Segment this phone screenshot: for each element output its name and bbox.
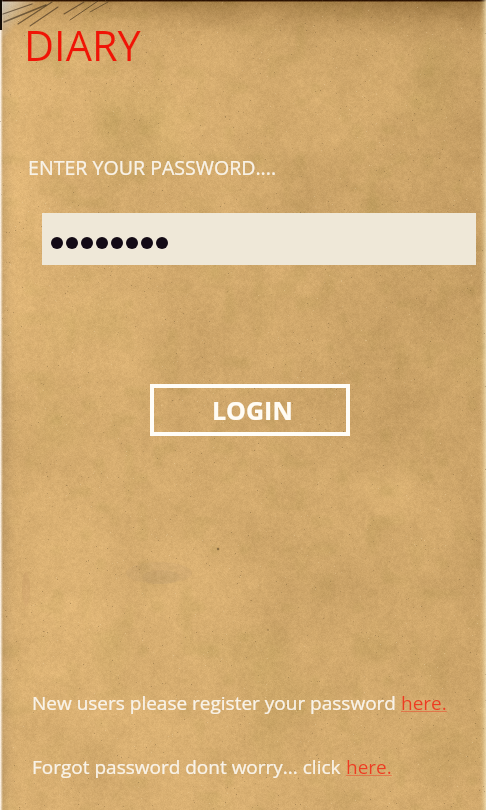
button[interactable]: here.	[346, 754, 392, 780]
staticText: New users please register your password	[32, 690, 401, 716]
button[interactable]: LOGIN	[150, 384, 350, 436]
staticText: LOGIN	[212, 393, 293, 427]
staticText: Forgot password dont worry... click	[32, 754, 346, 780]
staticText: ENTER YOUR PASSWORD....	[28, 154, 277, 181]
button[interactable]: here.	[401, 690, 447, 716]
staticText: DIARY	[24, 17, 141, 74]
button[interactable]: Password field	[42, 213, 476, 265]
